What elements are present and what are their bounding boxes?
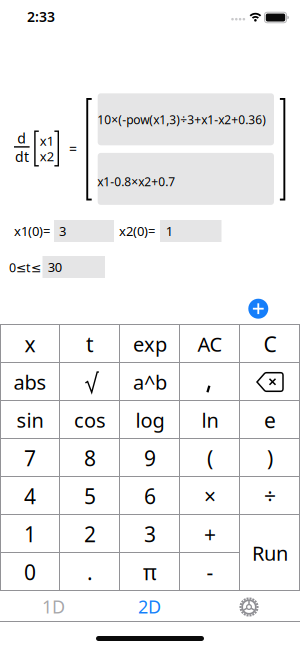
staticText: 6	[144, 482, 156, 510]
staticText: 3	[59, 222, 66, 240]
staticText: x2(0)=	[119, 222, 155, 240]
button[interactable]: 6	[120, 477, 180, 515]
staticText: )	[267, 444, 273, 472]
staticText: 2D	[138, 594, 161, 618]
button[interactable]: .	[60, 553, 120, 591]
staticText: π	[143, 558, 157, 586]
button[interactable]: cos	[60, 401, 120, 439]
button[interactable]: 30	[42, 256, 105, 278]
staticText: 8	[84, 444, 96, 472]
button[interactable]: 1	[160, 220, 221, 242]
staticText: C	[263, 330, 276, 358]
staticText: x1(0)=	[14, 222, 50, 240]
button[interactable]: t	[60, 325, 120, 363]
staticText: 2	[84, 520, 96, 548]
staticText: 1	[24, 520, 36, 548]
button[interactable]: 2D	[100, 591, 199, 621]
staticText: x2	[40, 148, 54, 165]
button[interactable]: e	[240, 401, 300, 439]
button[interactable]: 9	[120, 439, 180, 477]
button[interactable]: 2	[60, 515, 120, 553]
button[interactable]: 3	[120, 515, 180, 553]
staticText: dt	[15, 147, 29, 166]
staticText: x	[24, 330, 35, 358]
button[interactable]: Delete	[240, 363, 300, 401]
staticText: ln	[201, 407, 218, 433]
staticText: 9	[144, 444, 156, 472]
staticText: 5	[84, 482, 96, 510]
staticText: e	[264, 406, 276, 434]
staticText: 30	[48, 258, 62, 276]
button[interactable]: AC	[180, 325, 240, 363]
staticText: 4	[24, 482, 36, 510]
button[interactable]: ln	[180, 401, 240, 439]
button[interactable]: Run	[240, 515, 300, 591]
staticText: x1	[40, 132, 54, 149]
button[interactable]: π	[120, 553, 180, 591]
button[interactable]: Comma	[180, 363, 240, 401]
button[interactable]: abs	[0, 363, 60, 401]
button[interactable]: log	[120, 401, 180, 439]
button[interactable]: ×	[180, 477, 240, 515]
staticText: exp	[133, 331, 167, 357]
staticText: AC	[197, 331, 222, 357]
button[interactable]: C	[240, 325, 300, 363]
staticText: 3	[144, 520, 156, 548]
button[interactable]: 8	[60, 439, 120, 477]
staticText: 1D	[42, 594, 65, 618]
staticText: 7	[24, 444, 36, 472]
staticText: x1-0.8×x2+0.7	[97, 174, 175, 189]
button[interactable]: sin	[0, 401, 60, 439]
staticText: abs	[13, 369, 46, 395]
button[interactable]: 7	[0, 439, 60, 477]
button[interactable]: a^b	[120, 363, 180, 401]
button[interactable]: ÷	[240, 477, 300, 515]
staticText: =	[69, 139, 77, 158]
staticText: sin	[16, 407, 43, 433]
staticText: 2:33	[27, 7, 55, 26]
button[interactable]: x	[0, 325, 60, 363]
staticText: cos	[74, 407, 106, 433]
staticText: t	[86, 330, 94, 358]
staticText: -	[206, 558, 213, 586]
button[interactable]: 3	[54, 220, 114, 242]
button[interactable]: Square root	[60, 363, 120, 401]
button[interactable]: 4	[0, 477, 60, 515]
staticText: 1	[166, 222, 173, 240]
staticText: a^b	[133, 369, 167, 395]
button[interactable]: 1D	[4, 591, 103, 621]
button[interactable]: Settings	[219, 592, 279, 622]
button[interactable]: exp	[120, 325, 180, 363]
staticText: 10×(-pow(x1,3)÷3+x1-x2+0.36)	[97, 111, 266, 127]
button[interactable]: 10×(-pow(x1,3)÷3+x1-x2+0.36)	[98, 93, 274, 145]
button[interactable]: x1-0.8×x2+0.7	[98, 153, 274, 205]
staticText: 0	[24, 558, 36, 586]
button[interactable]: Add equation	[248, 299, 268, 319]
button[interactable]: )	[240, 439, 300, 477]
staticText: +	[204, 520, 216, 548]
staticText: Run	[252, 540, 288, 566]
staticText: d	[17, 129, 26, 147]
button[interactable]: 0	[0, 553, 60, 591]
button[interactable]: -	[180, 553, 240, 591]
staticText: ×	[204, 482, 216, 510]
staticText: log	[135, 407, 164, 433]
staticText: 0≤t≤	[9, 259, 41, 276]
staticText: ÷	[264, 482, 276, 510]
button[interactable]: 1	[0, 515, 60, 553]
button[interactable]: 5	[60, 477, 120, 515]
staticText: .	[87, 558, 93, 586]
button[interactable]: (	[180, 439, 240, 477]
staticText: (	[207, 444, 213, 472]
button[interactable]: +	[180, 515, 240, 553]
